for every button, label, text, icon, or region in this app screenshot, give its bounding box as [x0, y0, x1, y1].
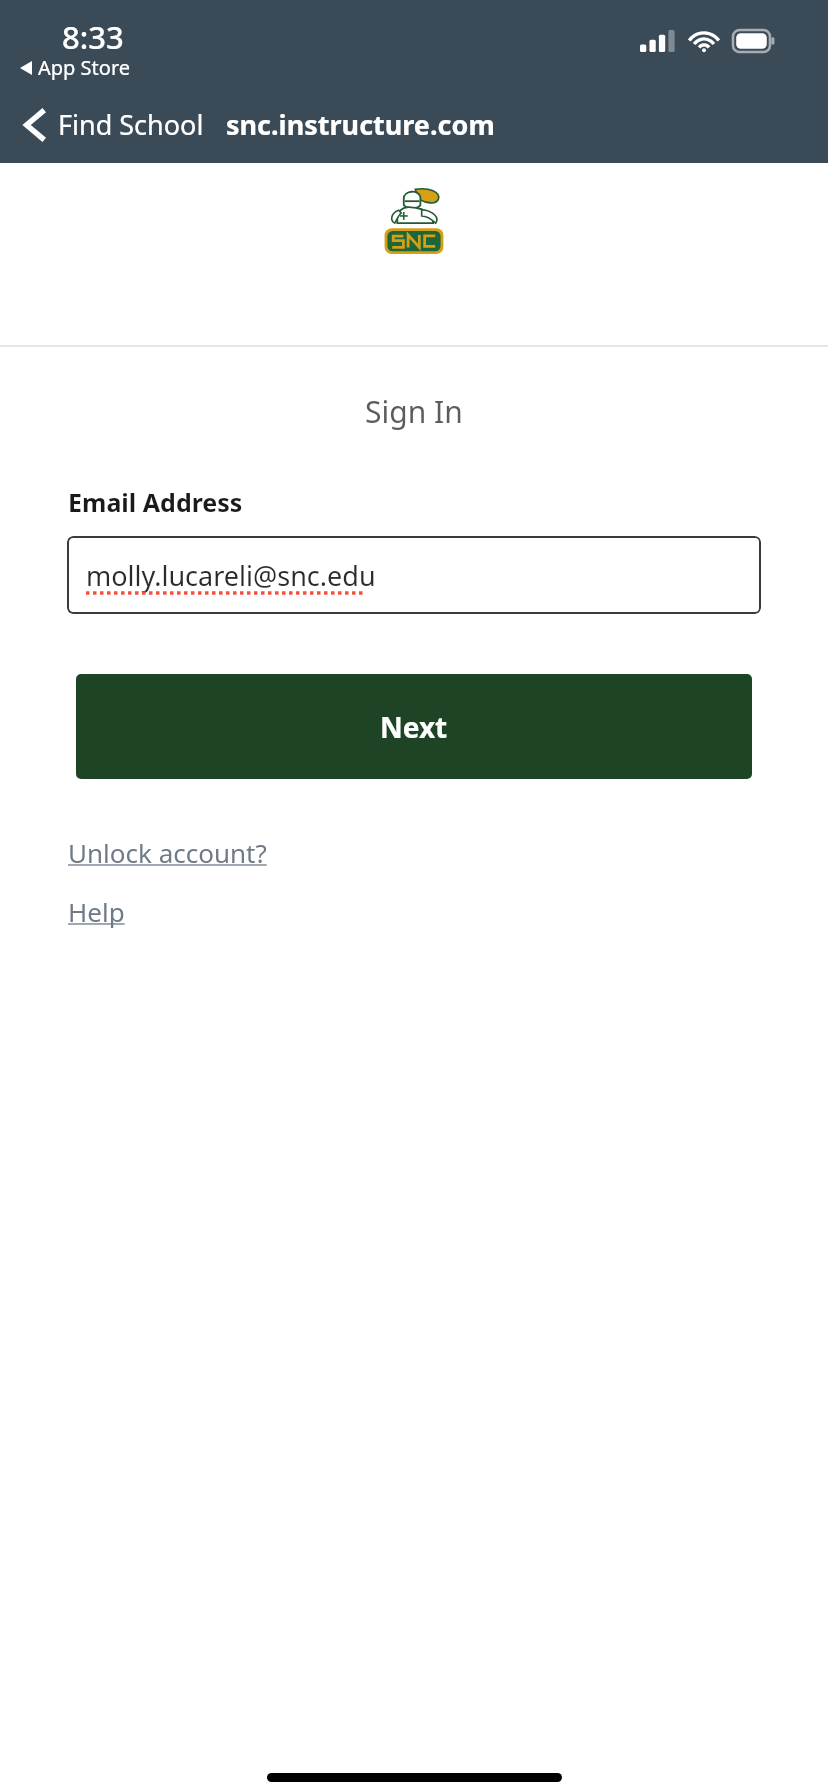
staticText: Find School — [58, 106, 204, 143]
staticText: Email Address — [68, 485, 243, 519]
button[interactable]: Find School — [18, 100, 210, 149]
button[interactable]: Unlock account? — [68, 835, 267, 870]
staticText: Next — [380, 708, 448, 746]
button[interactable]: Next — [76, 674, 752, 779]
staticText: molly.lucareli@snc.edu — [86, 557, 376, 594]
staticText: Help — [68, 894, 125, 929]
button[interactable]: molly.lucareli@snc.edu — [67, 536, 761, 614]
button[interactable]: snc.instructure.com — [226, 106, 495, 143]
staticText: Unlock account? — [68, 835, 267, 870]
staticText: App Store — [38, 54, 131, 81]
staticText: 8:33 — [62, 16, 124, 58]
staticText: Sign In — [365, 391, 463, 432]
button[interactable]: Help — [68, 894, 125, 929]
